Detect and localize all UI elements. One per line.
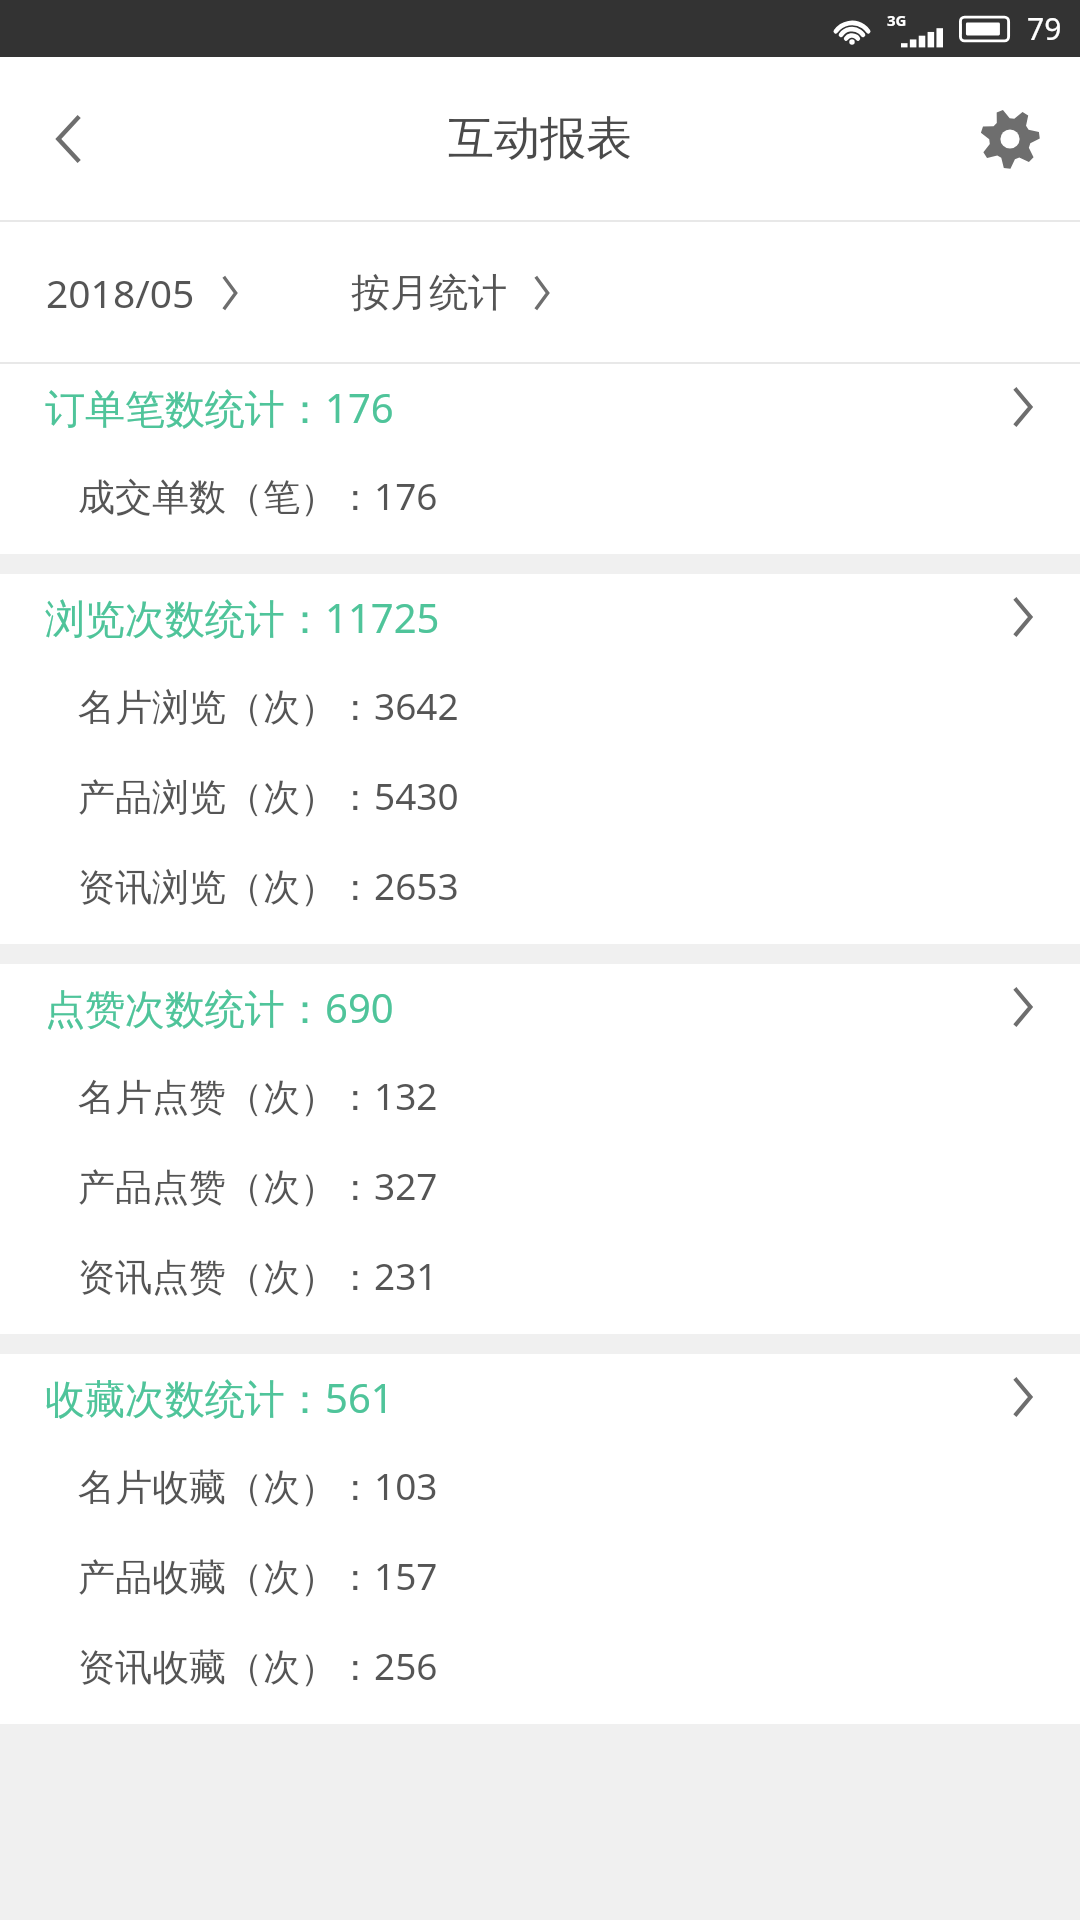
staticText: 互动报表	[448, 110, 632, 168]
staticText: 3G	[887, 10, 907, 30]
staticText: 资讯点赞（次）：231	[78, 1250, 438, 1301]
button[interactable]: 成交单数（笔）：176	[0, 450, 1080, 540]
button[interactable]: 点赞次数统计：690	[0, 964, 1080, 1050]
staticText: 名片点赞（次）：132	[78, 1070, 438, 1121]
button[interactable]: 产品浏览（次）：5430	[0, 750, 1080, 840]
button[interactable]: 名片收藏（次）：103	[0, 1440, 1080, 1530]
staticText: 79	[1027, 8, 1062, 49]
staticText: 名片收藏（次）：103	[78, 1460, 438, 1511]
staticText: 浏览次数统计：11725	[45, 590, 1006, 645]
staticText: 产品点赞（次）：327	[78, 1160, 438, 1211]
staticText: 订单笔数统计：176	[45, 380, 1006, 435]
staticText: 按月统计	[351, 268, 507, 317]
button[interactable]: 订单笔数统计：176	[0, 364, 1080, 450]
button[interactable]: 资讯点赞（次）：231	[0, 1230, 1080, 1320]
staticText: 名片浏览（次）：3642	[78, 680, 459, 731]
button[interactable]: 名片浏览（次）：3642	[0, 660, 1080, 750]
staticText: 资讯收藏（次）：256	[78, 1640, 438, 1691]
button[interactable]: Settings	[970, 99, 1050, 179]
button[interactable]: 浏览次数统计：11725	[0, 574, 1080, 660]
button[interactable]: 收藏次数统计：561	[0, 1354, 1080, 1440]
staticText: 收藏次数统计：561	[45, 1370, 1006, 1425]
staticText: 2018/05	[46, 266, 195, 319]
button[interactable]: 产品点赞（次）：327	[0, 1140, 1080, 1230]
button[interactable]: 名片点赞（次）：132	[0, 1050, 1080, 1140]
button[interactable]: 资讯收藏（次）：256	[0, 1620, 1080, 1710]
staticText: 点赞次数统计：690	[45, 980, 1006, 1035]
button[interactable]: 按月统计	[345, 258, 561, 327]
staticText: 产品浏览（次）：5430	[78, 770, 459, 821]
staticText: 产品收藏（次）：157	[78, 1550, 438, 1601]
staticText: 资讯浏览（次）：2653	[78, 860, 459, 911]
button[interactable]: Back	[30, 101, 106, 177]
button[interactable]: 2018/05	[40, 256, 249, 329]
button[interactable]: 资讯浏览（次）：2653	[0, 840, 1080, 930]
button[interactable]: 产品收藏（次）：157	[0, 1530, 1080, 1620]
staticText: 成交单数（笔）：176	[78, 470, 438, 521]
